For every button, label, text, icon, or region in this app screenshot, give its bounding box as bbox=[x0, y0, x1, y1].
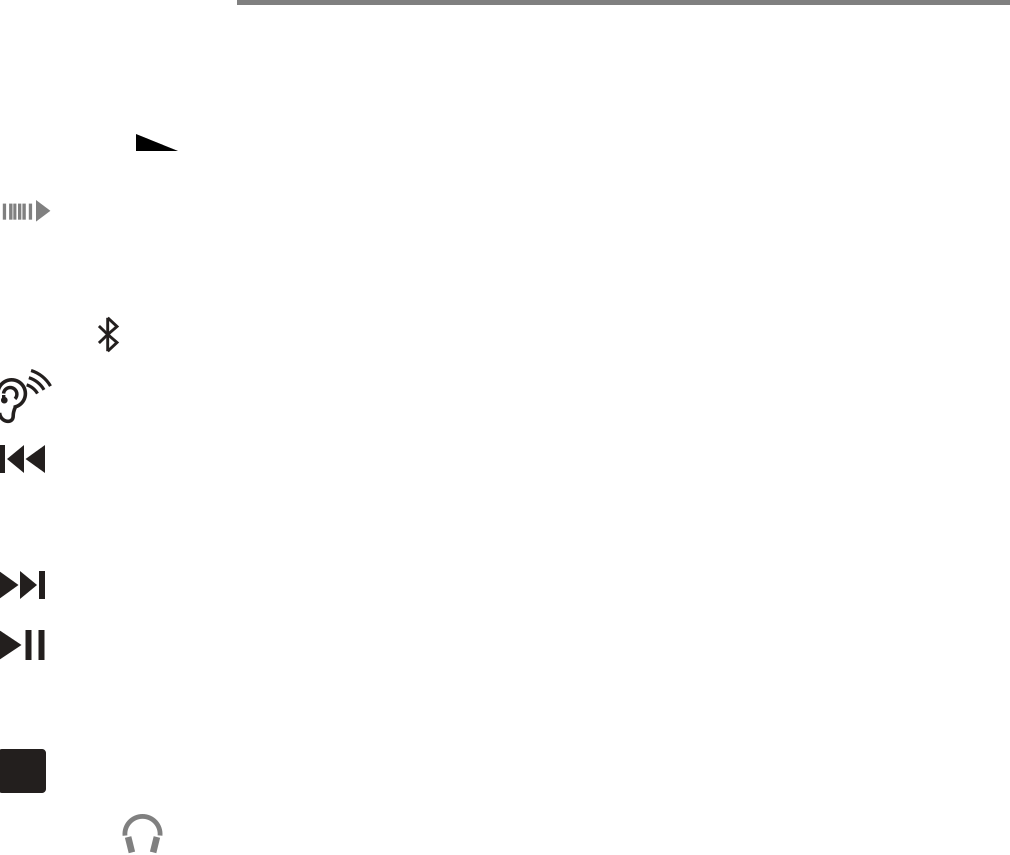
button[interactable]: Next track bbox=[0, 571, 46, 599]
button[interactable]: Headphones bbox=[120, 810, 166, 855]
button[interactable]: Bluetooth bbox=[98, 317, 118, 352]
button[interactable]: Play or pause bbox=[0, 630, 46, 660]
button[interactable]: Scan and play bbox=[0, 200, 51, 222]
button[interactable]: Hearing bbox=[0, 370, 57, 430]
button[interactable]: Stop bbox=[0, 749, 46, 793]
button[interactable]: Previous track bbox=[0, 445, 46, 473]
button[interactable]: Level bbox=[136, 134, 178, 151]
